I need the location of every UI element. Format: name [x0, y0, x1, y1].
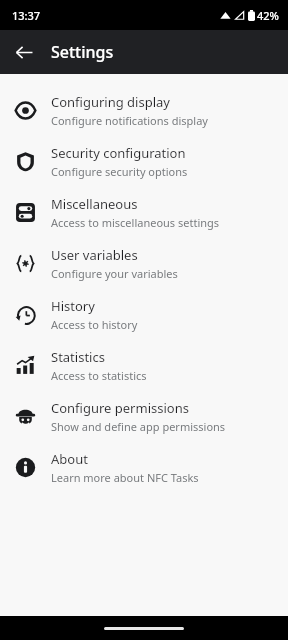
staticText: About	[51, 450, 88, 468]
staticText: Configuring display	[51, 93, 170, 111]
staticText: Configure permissions	[51, 399, 189, 417]
staticText: Access to miscellaneous settings	[51, 215, 220, 230]
staticText: Miscellaneous	[51, 195, 138, 213]
staticText: Access to statistics	[51, 368, 147, 383]
staticText: Security configuration	[51, 144, 186, 162]
staticText: Learn more about NFC Tasks	[51, 470, 199, 485]
button[interactable]: User variables	[0, 238, 288, 289]
staticText: Show and define app permissions	[51, 419, 226, 434]
staticText: 42%	[257, 8, 279, 23]
button[interactable]: Security configuration	[0, 136, 288, 187]
staticText: Statistics	[51, 348, 105, 366]
staticText: User variables	[51, 246, 138, 264]
button[interactable]: Configure permissions	[0, 391, 288, 442]
staticText: Settings	[51, 41, 114, 63]
button[interactable]: About	[0, 442, 288, 493]
staticText: History	[51, 297, 95, 315]
button[interactable]: History	[0, 289, 288, 340]
button[interactable]: Configuring display	[0, 85, 288, 136]
button[interactable]: Statistics	[0, 340, 288, 391]
staticText: Configure notifications display	[51, 113, 208, 128]
staticText: 13:37	[12, 8, 41, 23]
staticText: Configure your variables	[51, 266, 178, 281]
button[interactable]: Back	[6, 34, 42, 70]
staticText: Configure security options	[51, 164, 188, 179]
staticText: Access to history	[51, 317, 138, 332]
button[interactable]: Miscellaneous	[0, 187, 288, 238]
